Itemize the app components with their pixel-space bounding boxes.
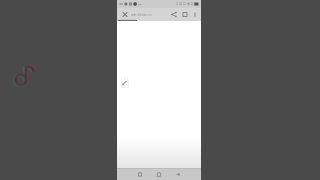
button[interactable]: Home — [152, 169, 165, 180]
button[interactable]: Recent apps — [133, 169, 146, 180]
button[interactable]: Tabs — [179, 8, 190, 21]
button[interactable]: More options — [190, 8, 199, 21]
button[interactable]: Share — [168, 8, 179, 21]
button[interactable]: Close tab — [120, 8, 129, 21]
button[interactable]: Back — [171, 169, 184, 180]
staticText: ads.tiktok.co — [130, 12, 151, 17]
